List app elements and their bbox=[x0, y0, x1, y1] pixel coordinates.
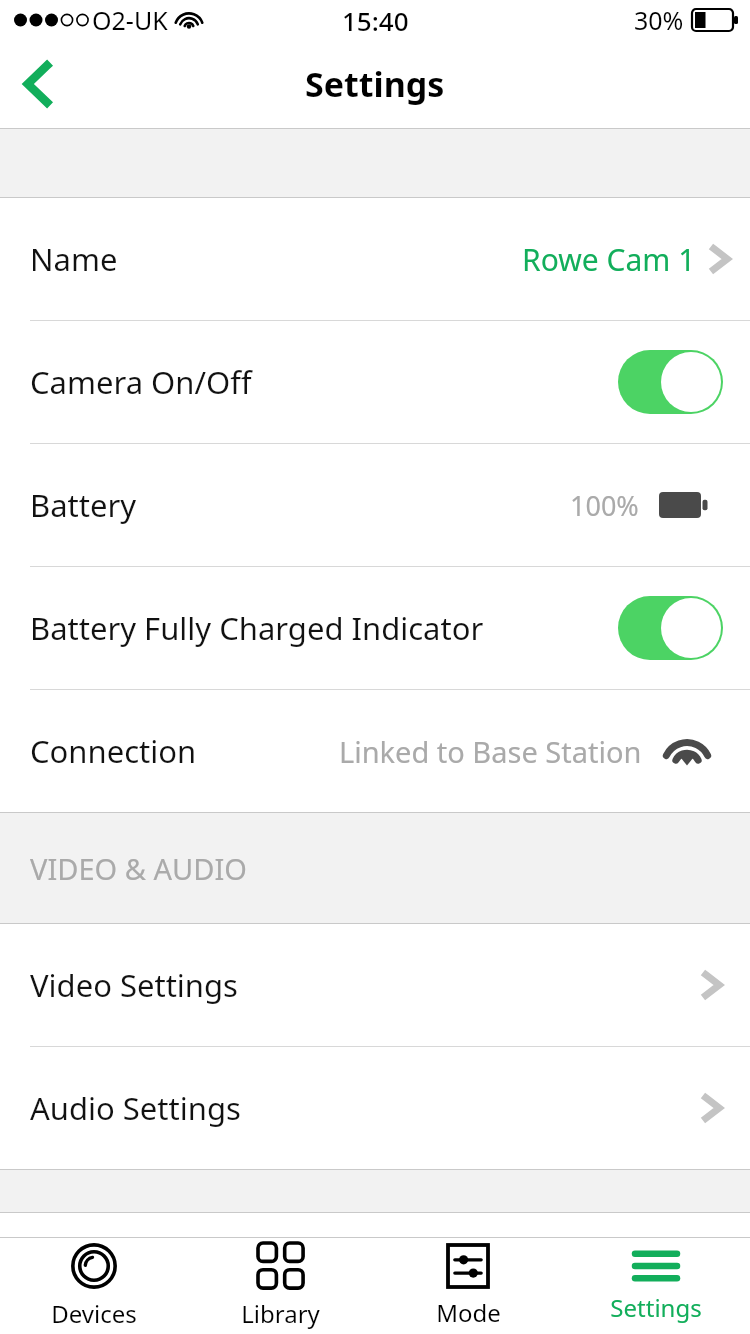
staticText: Rowe Cam 1 bbox=[522, 239, 696, 280]
staticText: Battery Fully Charged Indicator bbox=[30, 607, 484, 649]
button[interactable]: Connection bbox=[0, 690, 750, 812]
staticText: Camera On/Off bbox=[30, 361, 252, 403]
staticText: Name bbox=[30, 238, 118, 280]
staticText: 100% bbox=[570, 487, 639, 524]
staticText: O2-UK bbox=[92, 3, 168, 37]
staticText: Settings bbox=[610, 1291, 702, 1324]
staticText: 30% bbox=[634, 3, 684, 37]
staticText: Linked to Base Station bbox=[339, 732, 642, 771]
button[interactable]: Back bbox=[6, 52, 70, 116]
button[interactable]: Toggle on bbox=[618, 596, 723, 660]
button[interactable]: Toggle on bbox=[618, 350, 723, 414]
button[interactable]: Settings bbox=[562, 1238, 750, 1334]
button[interactable]: Devices bbox=[0, 1238, 187, 1334]
button[interactable]: Camera On/Off bbox=[0, 321, 750, 443]
button[interactable]: Audio Settings bbox=[0, 1047, 750, 1169]
staticText: Mode bbox=[436, 1296, 501, 1329]
button[interactable]: Battery Fully Charged Indicator bbox=[0, 567, 750, 689]
button[interactable]: Battery bbox=[0, 444, 750, 566]
staticText: Audio Settings bbox=[30, 1087, 241, 1129]
button[interactable]: Name bbox=[0, 198, 750, 320]
staticText: Library bbox=[241, 1297, 320, 1330]
staticText: Position Mode bbox=[30, 1292, 239, 1334]
button[interactable]: Library bbox=[187, 1238, 374, 1334]
staticText: VIDEO & AUDIO bbox=[30, 849, 247, 888]
staticText: 15:40 bbox=[342, 3, 409, 38]
staticText: Video Settings bbox=[30, 964, 238, 1006]
staticText: Settings bbox=[305, 61, 445, 107]
staticText: Battery bbox=[30, 484, 137, 526]
button[interactable]: Video Settings bbox=[0, 924, 750, 1046]
button[interactable]: Mode bbox=[374, 1238, 562, 1334]
staticText: Devices bbox=[51, 1297, 137, 1330]
staticText: Connection bbox=[30, 730, 197, 772]
